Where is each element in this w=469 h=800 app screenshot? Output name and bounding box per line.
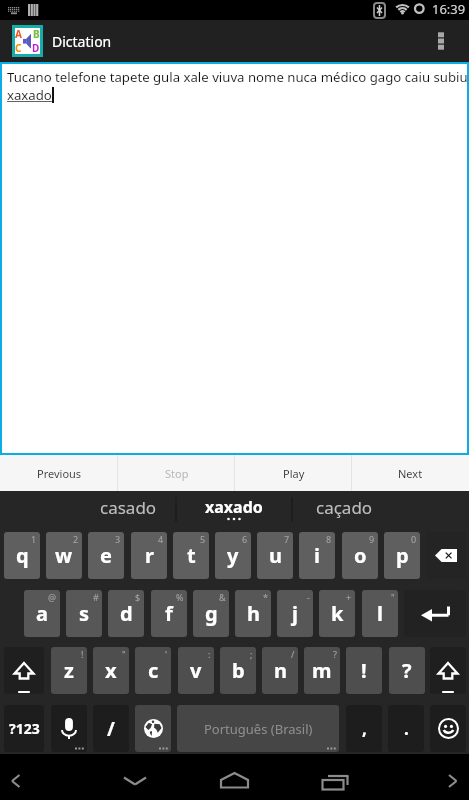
button[interactable]: . [388, 705, 424, 752]
staticText: m [312, 657, 332, 684]
staticText: f [165, 600, 173, 627]
button[interactable]: f [151, 590, 187, 637]
button[interactable]: d [108, 590, 144, 637]
button[interactable]: j [277, 590, 313, 637]
staticText: ! [361, 657, 367, 684]
button[interactable]: h [235, 590, 271, 637]
button[interactable]: Next [352, 455, 469, 491]
button[interactable]: Back [0, 754, 80, 800]
staticText: xaxado [205, 496, 263, 518]
staticText: 3 [115, 533, 121, 545]
button[interactable]: Hide keyboard [100, 754, 170, 800]
staticText: r [145, 542, 154, 569]
staticText: @ [48, 591, 57, 603]
button[interactable]: Previous [0, 455, 118, 491]
staticText: q [16, 542, 29, 569]
staticText: D [32, 41, 40, 55]
staticText: $ [135, 591, 141, 603]
button[interactable]: y [215, 532, 251, 579]
button[interactable]: ?123 [4, 705, 44, 752]
button[interactable]: m [304, 647, 340, 694]
button[interactable]: x [93, 647, 129, 694]
button[interactable]: p [384, 532, 420, 579]
staticText: ! [81, 648, 84, 660]
staticText: : [208, 648, 211, 660]
staticText: 7 [284, 533, 290, 545]
button[interactable]: Emoji [430, 705, 466, 752]
staticText: h [247, 600, 260, 627]
staticText: d [120, 600, 133, 627]
button[interactable]: Stop [118, 455, 235, 491]
button[interactable]: Português (Brasil) [177, 705, 339, 752]
staticText: " [122, 648, 126, 660]
button[interactable]: r [131, 532, 167, 579]
button[interactable]: i [299, 532, 335, 579]
staticText: / [291, 648, 295, 660]
staticText: 1 [31, 533, 37, 545]
staticText: 16:39 [432, 0, 466, 18]
staticText: 0 [411, 533, 417, 545]
button[interactable]: Shift [430, 647, 466, 694]
staticText: w [55, 542, 73, 569]
staticText: c [148, 657, 159, 684]
staticText: 2 [73, 533, 79, 545]
staticText: & [219, 591, 226, 603]
staticText: o [354, 542, 367, 569]
button[interactable]: k [319, 590, 355, 637]
button[interactable]: o [342, 532, 378, 579]
button[interactable]: xaxado [176, 491, 292, 527]
staticText: b [232, 657, 245, 684]
button[interactable]: l [362, 590, 398, 637]
staticText: , [362, 717, 367, 740]
button[interactable]: Enter [404, 590, 466, 637]
staticText: Stop [165, 466, 189, 481]
button[interactable]: More options [417, 20, 465, 62]
button[interactable]: Home [200, 754, 270, 800]
staticText: u [269, 542, 282, 569]
staticText: Previous [37, 466, 82, 481]
button[interactable]: Backspace [426, 532, 466, 579]
staticText: ' [165, 648, 168, 660]
staticText: casado [100, 496, 157, 519]
button[interactable]: , [346, 705, 382, 752]
button[interactable]: t [173, 532, 209, 579]
staticText: n [274, 657, 287, 684]
staticText: ? [402, 657, 412, 684]
button[interactable]: ? [389, 647, 425, 694]
staticText: xaxado [7, 86, 52, 104]
button[interactable]: q [4, 532, 40, 579]
button[interactable]: Voice input [51, 705, 87, 752]
button[interactable]: Forward [420, 754, 469, 800]
button[interactable]: Recents [300, 754, 370, 800]
button[interactable]: z [51, 647, 87, 694]
button[interactable]: v [178, 647, 214, 694]
staticText: Play [283, 466, 305, 481]
button[interactable]: ! [346, 647, 382, 694]
staticText: 4 [158, 533, 164, 545]
staticText: / [107, 716, 115, 742]
staticText: p [396, 542, 409, 569]
button[interactable]: b [220, 647, 256, 694]
button[interactable]: u [257, 532, 293, 579]
button[interactable]: w [46, 532, 82, 579]
staticText: a [36, 600, 48, 627]
staticText: # [93, 591, 99, 603]
button[interactable]: a [24, 590, 60, 637]
button[interactable]: casado [70, 491, 186, 527]
button[interactable]: g [193, 590, 229, 637]
button[interactable]: n [262, 647, 298, 694]
staticText: ? [333, 648, 337, 660]
staticText: z [64, 657, 74, 684]
button[interactable]: / [93, 705, 129, 752]
button[interactable]: Change language [135, 705, 171, 752]
button[interactable]: c [135, 647, 171, 694]
button[interactable]: caçado [286, 491, 402, 527]
button[interactable]: Tucano telefone tapete gula xale viuva n… [2, 64, 467, 453]
staticText: . [404, 717, 409, 740]
button[interactable]: Shift [4, 647, 44, 694]
staticText: - [307, 591, 310, 603]
button[interactable]: s [66, 590, 102, 637]
button[interactable]: e [88, 532, 124, 579]
button[interactable]: Play [235, 455, 352, 491]
staticText: s [79, 600, 90, 627]
